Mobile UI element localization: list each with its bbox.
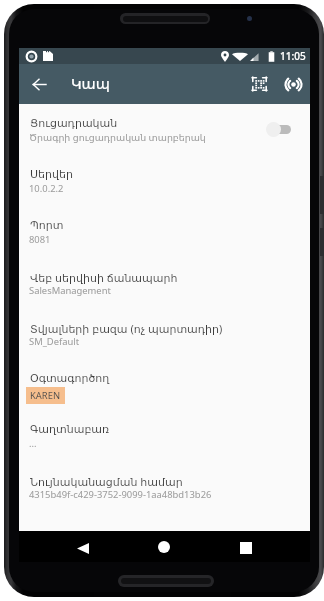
button[interactable]: Վեբ սերվիսի ճանապարհ	[19, 263, 310, 314]
button[interactable]: Նույնականացման համար	[19, 467, 310, 518]
staticText: Նույնականացման համար	[30, 474, 183, 489]
button[interactable]: Recent apps	[231, 533, 261, 563]
button[interactable]: Back	[23, 68, 55, 100]
staticText: Օգտագործող	[30, 372, 110, 385]
staticText: Գաղտնաբառ	[30, 423, 110, 436]
staticText: ...	[29, 437, 37, 450]
button[interactable]: Օգտագործող	[19, 365, 310, 416]
staticText: Կապ	[71, 76, 110, 93]
button[interactable]: Scan QR code	[244, 69, 274, 99]
staticText: 8081	[29, 233, 51, 246]
button[interactable]: Գաղտնաբառ	[19, 416, 310, 467]
button[interactable]: Home	[149, 532, 179, 562]
staticText: Ծրագրի ցուցադրական տարբերակ	[29, 131, 206, 144]
staticText: 4315b49f-c429-3752-9099-1aa48bd13b26	[29, 488, 212, 501]
button[interactable]: Տվյալների բազա (ոչ պարտադիր)	[19, 314, 310, 365]
staticText: Պորտ	[30, 219, 64, 232]
button[interactable]: Սերվեր	[19, 161, 310, 212]
staticText: KAREN	[30, 389, 61, 402]
staticText: 10.0.2.2	[29, 182, 64, 195]
staticText: Վեբ սերվիսի ճանապարհ	[30, 270, 178, 285]
button[interactable]: Back	[68, 533, 98, 563]
staticText: SalesManagement	[29, 284, 111, 297]
staticText: 11:05	[280, 49, 306, 63]
staticText: Ցուցադրական	[30, 117, 118, 130]
button[interactable]: Ցուցադրական	[19, 110, 310, 161]
staticText: SM_Default	[29, 335, 80, 348]
button[interactable]: Demo toggle	[260, 116, 298, 140]
button[interactable]: Պորտ	[19, 212, 310, 263]
staticText: Սերվեր	[30, 168, 73, 181]
staticText: Տվյալների բազա (ոչ պարտադիր)	[30, 321, 223, 336]
button[interactable]: Broadcast	[278, 69, 308, 99]
